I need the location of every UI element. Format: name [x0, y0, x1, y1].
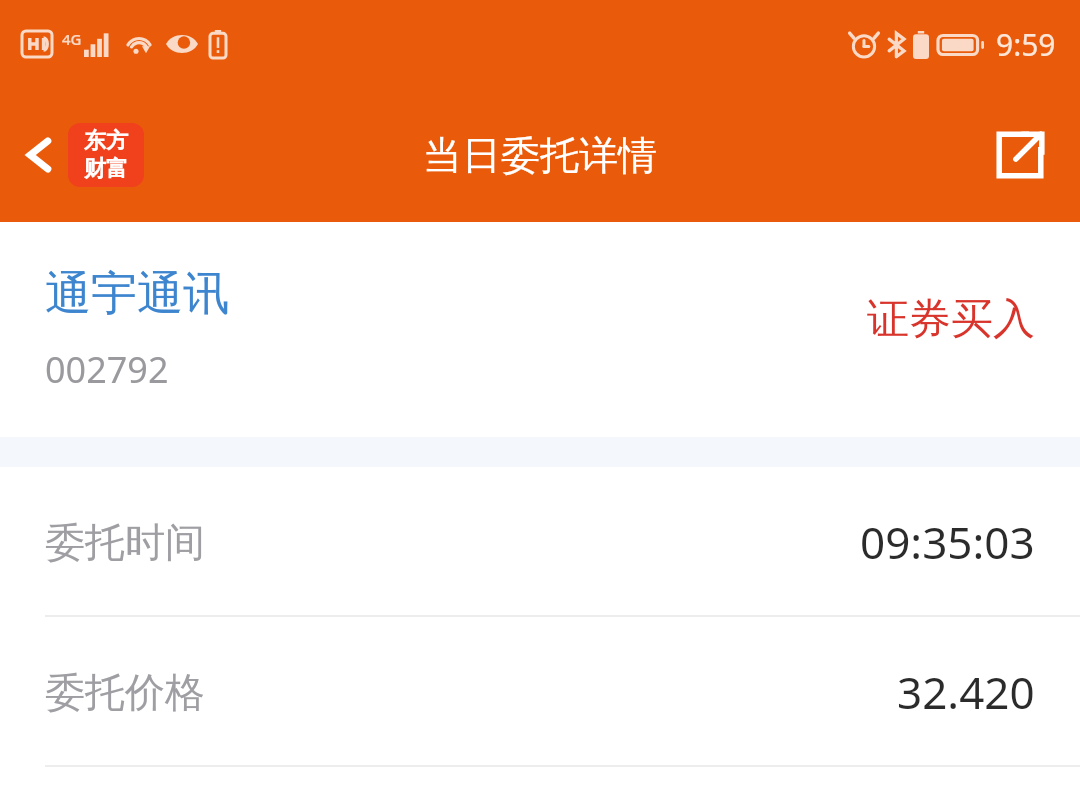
staticText: 9:59	[996, 24, 1056, 65]
staticText: 002792	[45, 345, 169, 394]
staticText: 当日委托详情	[423, 131, 657, 180]
button[interactable]: 返回	[16, 115, 150, 195]
staticText: 32.420	[897, 662, 1035, 722]
button[interactable]: 委托价格	[0, 617, 1080, 767]
staticText: 4G	[62, 29, 82, 49]
staticText: 财富	[84, 155, 128, 183]
button[interactable]: 通宇通讯	[0, 222, 1080, 437]
button[interactable]: 分享	[986, 121, 1054, 189]
staticText: 通宇通讯	[45, 265, 229, 323]
staticText: 09:35:03	[860, 512, 1035, 572]
staticText: 委托价格	[45, 667, 205, 717]
staticText: 委托时间	[45, 517, 205, 567]
staticText: 东方	[84, 127, 128, 155]
staticText: 证券买入	[867, 293, 1035, 346]
button[interactable]: 委托时间	[0, 467, 1080, 617]
